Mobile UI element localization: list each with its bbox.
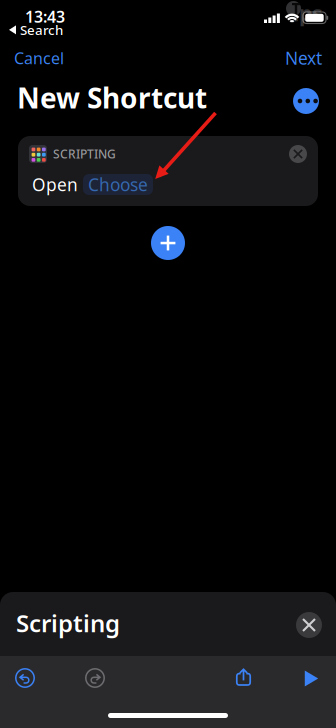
button[interactable]: Choose xyxy=(83,174,153,195)
staticText: Cancel xyxy=(14,47,64,69)
staticText: Search xyxy=(20,21,63,39)
button[interactable]: Next xyxy=(258,45,322,71)
button[interactable]: Share xyxy=(234,667,253,688)
button[interactable]: Run shortcut xyxy=(304,670,319,687)
button[interactable]: Cancel xyxy=(14,45,78,71)
button[interactable]: Add action xyxy=(151,226,185,260)
button[interactable]: Close xyxy=(296,612,322,638)
staticText: ips xyxy=(293,0,323,27)
staticText: Scripting xyxy=(16,607,120,639)
button[interactable]: More options xyxy=(293,88,319,114)
staticText: Open xyxy=(32,173,78,196)
button[interactable]: Redo xyxy=(85,668,105,688)
staticText: Choose xyxy=(88,173,148,196)
button[interactable]: Remove action xyxy=(289,145,307,163)
staticText: Next xyxy=(285,46,322,69)
staticText: SCRIPTING xyxy=(53,146,116,162)
staticText: New Shortcut xyxy=(17,79,207,116)
staticText: 13:43 xyxy=(25,6,65,27)
button[interactable]: Undo xyxy=(15,668,35,688)
